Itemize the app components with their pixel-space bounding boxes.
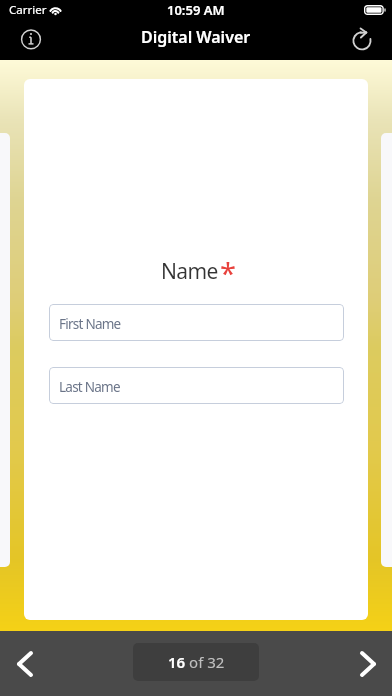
button[interactable]: Information (11, 20, 51, 60)
button[interactable]: Previous page (0, 631, 49, 696)
staticText: First Name (59, 315, 121, 333)
staticText: Last Name (59, 378, 120, 396)
button[interactable]: 16 of 32 (133, 643, 259, 681)
staticText: 16 of 32 (168, 652, 225, 672)
staticText: * (220, 253, 236, 292)
button[interactable]: Refresh (343, 20, 383, 60)
button[interactable]: Last Name (49, 367, 344, 404)
staticText: Digital Waiver (141, 26, 251, 48)
staticText: 10:59 AM (167, 1, 225, 19)
button[interactable]: First Name (49, 304, 344, 341)
staticText: Carrier (9, 2, 47, 18)
button[interactable]: Next page (343, 631, 392, 696)
staticText: Name (161, 257, 218, 286)
